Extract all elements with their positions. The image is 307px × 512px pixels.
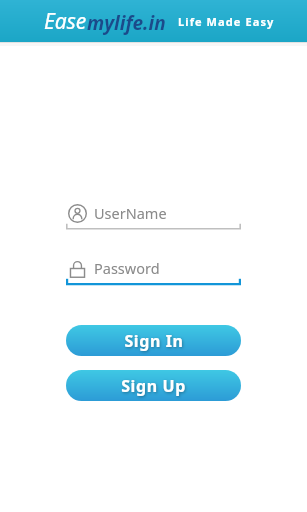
button[interactable]: Password — [66, 253, 241, 290]
staticText: Sign Up — [121, 375, 186, 397]
button[interactable]: Sign Up — [66, 370, 241, 401]
staticText: Ease — [44, 7, 87, 36]
staticText: mylife.in — [87, 10, 166, 36]
staticText: Password — [94, 258, 160, 278]
button[interactable]: User name — [66, 198, 241, 235]
staticText: Life Made Easy — [178, 14, 275, 29]
button[interactable]: Sign In — [66, 325, 241, 356]
staticText: Sign In — [124, 330, 184, 352]
staticText: UserName — [94, 203, 167, 223]
